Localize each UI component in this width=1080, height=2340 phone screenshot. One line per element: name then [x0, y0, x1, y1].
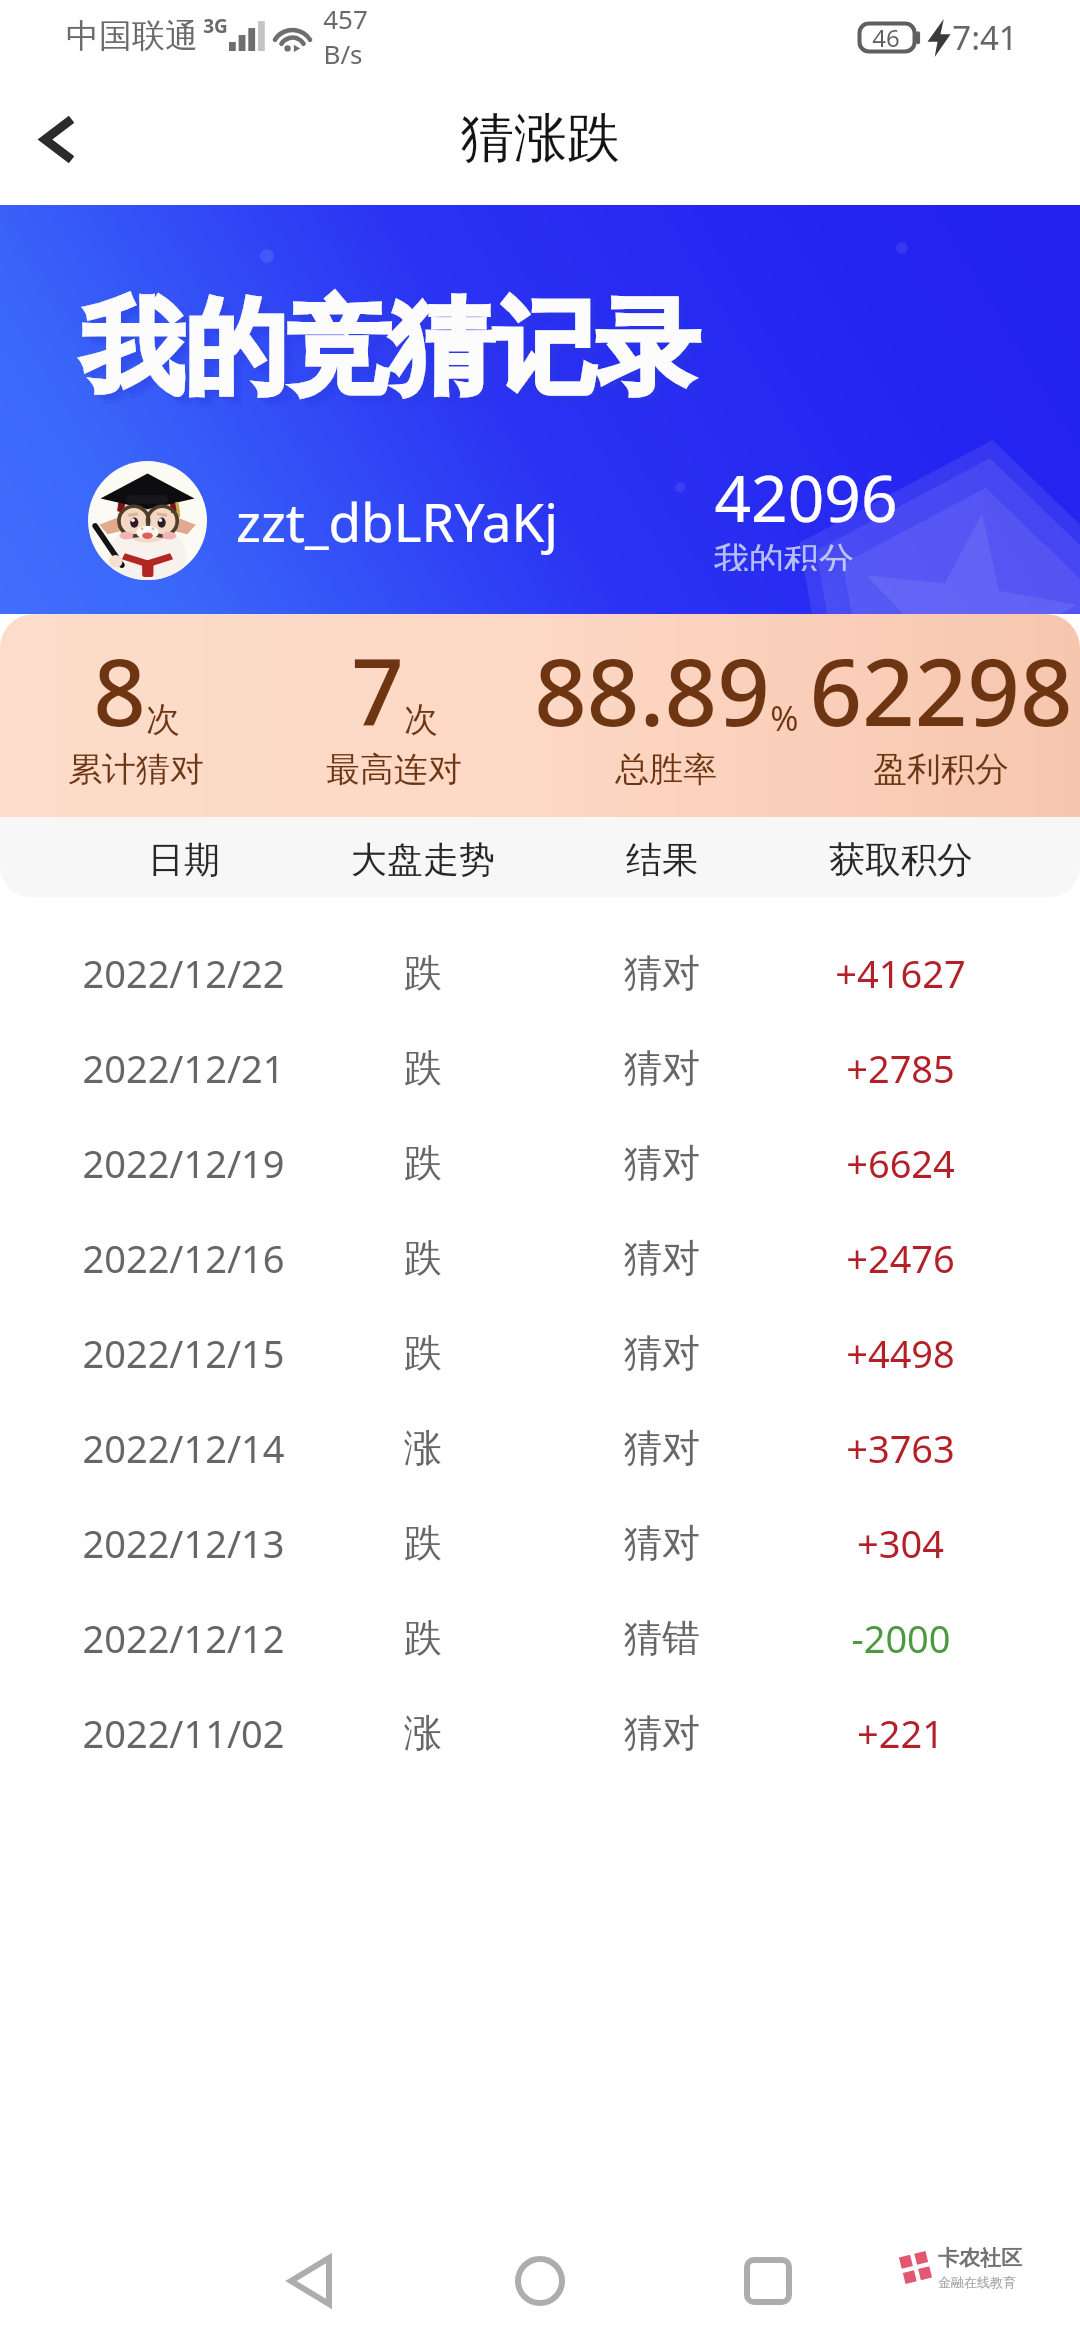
staticText: 2022/12/21: [82, 1042, 285, 1094]
staticText: 涨: [404, 1709, 442, 1757]
staticText: +4498: [846, 1327, 955, 1379]
staticText: +2476: [846, 1232, 955, 1284]
staticText: 457: [323, 1, 368, 36]
staticText: 我的竞猜记录: [87, 290, 705, 420]
staticText: 盈利积分: [873, 748, 1009, 791]
staticText: 跌: [404, 1519, 442, 1567]
staticText: 2022/12/16: [82, 1232, 285, 1284]
button[interactable]: 2022/12/14: [0, 1400, 1080, 1495]
staticText: B/s: [323, 36, 363, 71]
staticText: +304: [857, 1517, 944, 1569]
staticText: 猜错: [624, 1614, 700, 1662]
staticText: 8: [93, 628, 146, 753]
button[interactable]: 2022/12/21: [0, 1020, 1080, 1115]
staticText: 猜对: [624, 1044, 700, 1092]
staticText: 2022/12/15: [82, 1327, 285, 1379]
button[interactable]: Home: [494, 2235, 586, 2327]
staticText: 我的竞猜记录: [84, 287, 702, 417]
staticText: +41627: [835, 947, 966, 999]
staticText: 2022/12/14: [82, 1422, 285, 1474]
staticText: 2022/12/19: [82, 1137, 285, 1189]
staticText: 猜涨跌: [461, 105, 620, 172]
staticText: 次: [146, 698, 180, 741]
staticText: 累计猜对: [68, 748, 204, 791]
staticText: 次: [404, 698, 438, 741]
staticText: +6624: [846, 1137, 955, 1189]
staticText: 我的竞猜记录: [81, 284, 699, 414]
button[interactable]: 2022/12/22: [0, 925, 1080, 1020]
staticText: 我的竞猜记录: [90, 293, 708, 423]
button[interactable]: 2022/12/13: [0, 1495, 1080, 1590]
staticText: 猜对: [624, 1519, 700, 1567]
staticText: 最高连对: [326, 748, 462, 791]
staticText: 猜对: [624, 1709, 700, 1757]
staticText: -2000: [851, 1612, 951, 1664]
staticText: 猜对: [624, 949, 700, 997]
staticText: 62298: [809, 628, 1073, 753]
staticText: 猜对: [624, 1139, 700, 1187]
button[interactable]: Back: [263, 2235, 355, 2327]
staticText: 涨: [404, 1424, 442, 1472]
staticText: 2022/12/13: [82, 1517, 285, 1569]
staticText: 获取积分: [829, 837, 973, 882]
staticText: 结果: [626, 837, 698, 882]
staticText: %: [770, 695, 799, 741]
staticText: 金融在线教育: [938, 2274, 1016, 2290]
button[interactable]: 2022/12/15: [0, 1305, 1080, 1400]
staticText: 2022/12/12: [82, 1612, 285, 1664]
button[interactable]: 42096: [714, 448, 974, 568]
staticText: 跌: [404, 949, 442, 997]
staticText: 猜对: [624, 1424, 700, 1472]
staticText: 跌: [404, 1614, 442, 1662]
staticText: 卡农社区: [938, 2245, 1022, 2271]
staticText: 跌: [404, 1234, 442, 1282]
button[interactable]: 2022/11/02: [0, 1685, 1080, 1780]
staticText: 总胜率: [615, 748, 717, 791]
staticText: 3G: [203, 13, 228, 39]
staticText: 2022/11/02: [82, 1707, 285, 1759]
staticText: +3763: [846, 1422, 955, 1474]
staticText: 猜对: [624, 1329, 700, 1377]
staticText: +221: [857, 1707, 944, 1759]
staticText: 2022/12/22: [82, 947, 285, 999]
staticText: +2785: [846, 1042, 955, 1094]
button[interactable]: Recents: [722, 2235, 814, 2327]
staticText: 猜对: [624, 1234, 700, 1282]
staticText: zzt_dbLRYaKj: [236, 485, 558, 557]
staticText: 大盘走势: [351, 837, 495, 882]
staticText: 中国联通: [66, 15, 198, 57]
staticText: 跌: [404, 1329, 442, 1377]
staticText: 日期: [148, 837, 220, 882]
staticText: 我的积分: [714, 538, 854, 571]
button[interactable]: 2022/12/12: [0, 1590, 1080, 1685]
staticText: 88.89: [534, 628, 770, 753]
staticText: 跌: [404, 1139, 442, 1187]
staticText: 跌: [404, 1044, 442, 1092]
button[interactable]: 2022/12/16: [0, 1210, 1080, 1305]
staticText: 7: [351, 628, 404, 753]
staticText: 42096: [714, 454, 898, 541]
staticText: 7:41: [952, 15, 1018, 60]
button[interactable]: zzt_dbLRYaKj: [88, 454, 568, 586]
button[interactable]: 2022/12/19: [0, 1115, 1080, 1210]
staticText: 46: [872, 21, 900, 54]
button[interactable]: Back: [14, 97, 98, 181]
